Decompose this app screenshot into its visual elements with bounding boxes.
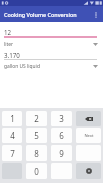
staticText: 2 xyxy=(34,113,39,124)
button[interactable]: 9 xyxy=(51,145,72,161)
button[interactable]: More options xyxy=(89,6,103,22)
button[interactable]: 3 xyxy=(51,111,72,126)
staticText: Cooking Volume Conversion xyxy=(4,11,77,18)
staticText: 3.170 xyxy=(4,51,20,59)
staticText: 12 xyxy=(4,28,12,36)
button[interactable]: liter xyxy=(0,40,103,49)
staticText: 3 xyxy=(59,113,64,124)
button[interactable]: 6 xyxy=(51,128,72,143)
staticText: 6 xyxy=(59,130,64,141)
button[interactable]: Next xyxy=(76,128,101,143)
staticText: 1 xyxy=(10,113,15,124)
button[interactable]: gallon US liquid xyxy=(0,62,103,71)
button[interactable]: Settings xyxy=(76,163,101,179)
staticText: liter xyxy=(4,41,14,48)
staticText: 9 xyxy=(59,148,64,159)
staticText: 5 xyxy=(34,130,39,141)
button[interactable]: 1 xyxy=(2,111,22,126)
button[interactable]: Backspace xyxy=(76,111,101,126)
button[interactable]: 4 xyxy=(2,128,22,143)
button[interactable]: 7 xyxy=(2,145,22,161)
staticText: Next xyxy=(84,133,94,139)
staticText: 8 xyxy=(34,148,39,159)
button[interactable]: 8 xyxy=(26,145,47,161)
button[interactable]: 0 xyxy=(26,163,47,179)
button[interactable]: 2 xyxy=(26,111,47,126)
staticText: 4 xyxy=(10,130,15,141)
button[interactable]: 5 xyxy=(26,128,47,143)
staticText: 7 xyxy=(10,148,15,159)
staticText: 0 xyxy=(34,166,39,177)
staticText: gallon US liquid xyxy=(4,63,40,70)
